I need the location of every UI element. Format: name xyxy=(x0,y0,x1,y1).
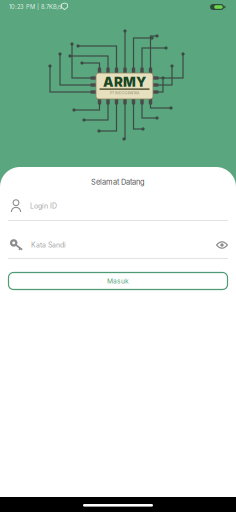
staticText: PT INDOGRAFIKA xyxy=(110,91,139,95)
staticText: Kata Sandi xyxy=(31,241,66,249)
staticText: Selamat Datang xyxy=(91,177,145,186)
staticText: Login ID xyxy=(30,202,57,210)
staticText: 10:23 PM | 8.7KB/s xyxy=(9,3,62,10)
button[interactable]: Masuk xyxy=(8,272,227,289)
button[interactable]: Show password xyxy=(216,240,228,250)
staticText: Masuk xyxy=(107,277,129,285)
staticText: ARMY xyxy=(103,74,146,90)
